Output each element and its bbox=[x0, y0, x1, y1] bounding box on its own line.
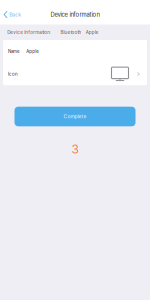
staticText: Apple bbox=[86, 29, 99, 35]
staticText: Device Information: bbox=[7, 29, 51, 35]
staticText: Device information bbox=[50, 11, 99, 18]
staticText: 3 bbox=[71, 142, 78, 156]
staticText: Complete bbox=[63, 113, 86, 119]
staticText: Back bbox=[9, 11, 21, 18]
staticText: Apple bbox=[26, 49, 39, 54]
button[interactable]: Complete bbox=[14, 107, 135, 126]
button[interactable]: Back bbox=[0, 0, 27, 24]
button[interactable]: Icon bbox=[3, 63, 147, 85]
staticText: Icon bbox=[8, 71, 18, 77]
staticText: Bluetooth bbox=[60, 29, 81, 35]
staticText: Name bbox=[8, 49, 20, 54]
